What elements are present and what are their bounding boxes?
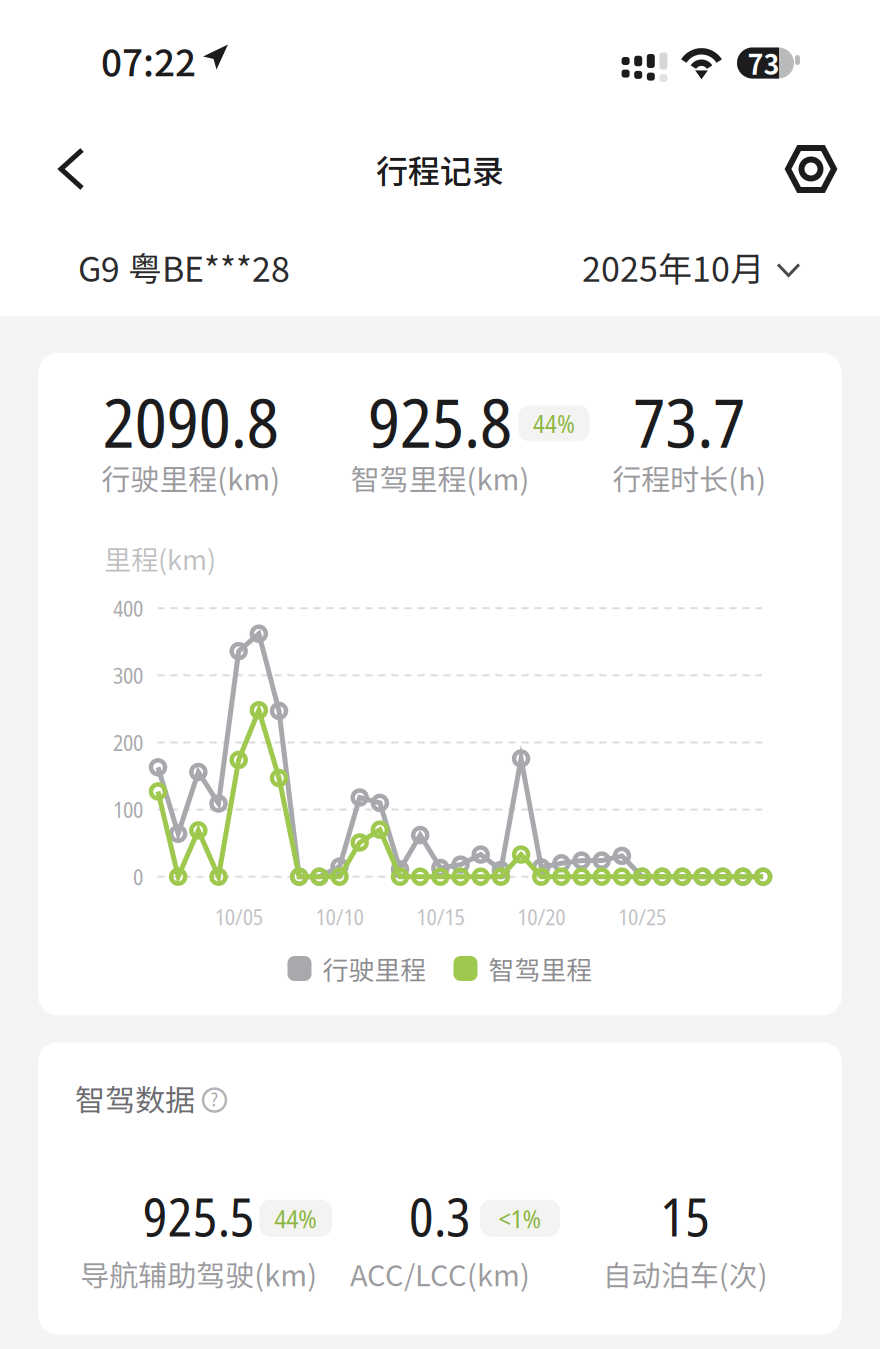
staticText: 100 [113,795,143,825]
button[interactable]: Settings [772,130,850,208]
staticText: 10/20 [517,902,565,932]
staticText: 300 [113,660,143,690]
staticText: 44% [533,406,575,440]
staticText: 44% [274,1200,317,1236]
staticText: <1% [498,1200,541,1236]
staticText: 10/15 [416,902,464,932]
staticText: 925.8 [368,375,512,468]
staticText: 智驾里程(km) [350,457,529,499]
staticText: 0.3 [409,1181,471,1252]
staticText: 07:22 [101,33,196,87]
staticText: 导航辅助驾驶(km) [80,1253,317,1295]
button[interactable]: 智驾数据 [38,1042,226,1130]
staticText: 2025年10月 [582,242,764,292]
staticText: 15 [660,1181,710,1252]
staticText: ACC/LCC(km) [350,1253,530,1295]
staticText: 10/05 [215,902,263,932]
staticText: 2090.8 [103,375,279,468]
button[interactable]: Back [35,130,108,208]
staticText: 里程(km) [104,539,216,578]
staticText: 73 [747,43,779,83]
staticText: 10/25 [618,902,666,932]
staticText: 925.5 [143,1181,255,1252]
staticText: 200 [113,727,143,757]
staticText: 自动泊车(次) [603,1253,768,1295]
staticText: 智驾数据 [75,1076,195,1120]
staticText: 行程记录 [376,146,504,192]
staticText: 行程时长(h) [612,457,766,499]
staticText: 400 [113,593,143,623]
staticText: 0 [133,862,143,892]
staticText: G9 粤BE***28 [78,242,290,292]
staticText: 智驾里程 [488,950,592,987]
button[interactable]: 2025年10月 [582,226,799,308]
staticText: 73.7 [633,375,745,468]
staticText: ? [211,1086,218,1112]
button[interactable]: G9 粤BE***28 [78,226,290,308]
staticText: 行驶里程(km) [101,457,280,499]
staticText: 10/10 [315,902,363,932]
staticText: 行驶里程 [322,950,426,987]
